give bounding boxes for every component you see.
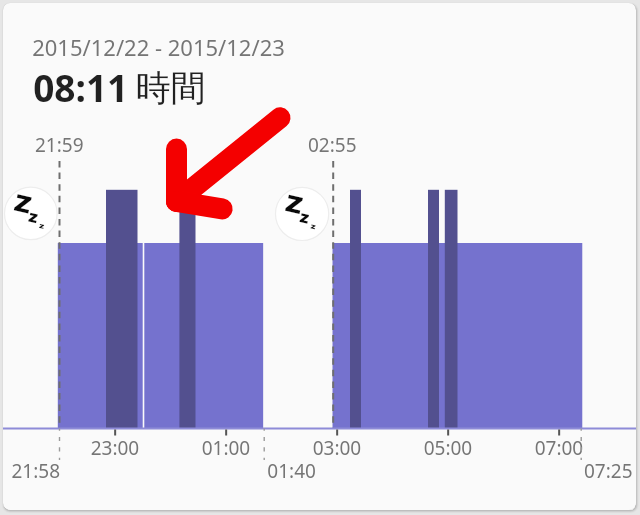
button[interactable]	[3, 3, 636, 510]
